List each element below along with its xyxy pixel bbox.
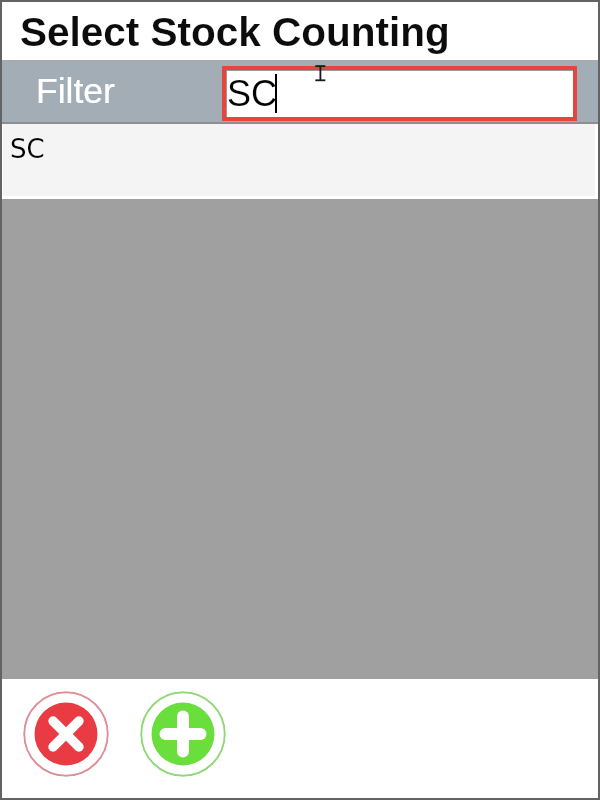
staticText: SC — [10, 134, 45, 164]
button[interactable]: SC — [227, 71, 573, 117]
staticText: SC — [227, 73, 278, 113]
staticText: Filter — [36, 71, 115, 111]
staticText: Select Stock Counting — [20, 9, 450, 54]
button[interactable]: Add — [140, 691, 226, 777]
button[interactable]: Cancel — [23, 691, 109, 777]
button[interactable]: SC — [3, 124, 595, 196]
